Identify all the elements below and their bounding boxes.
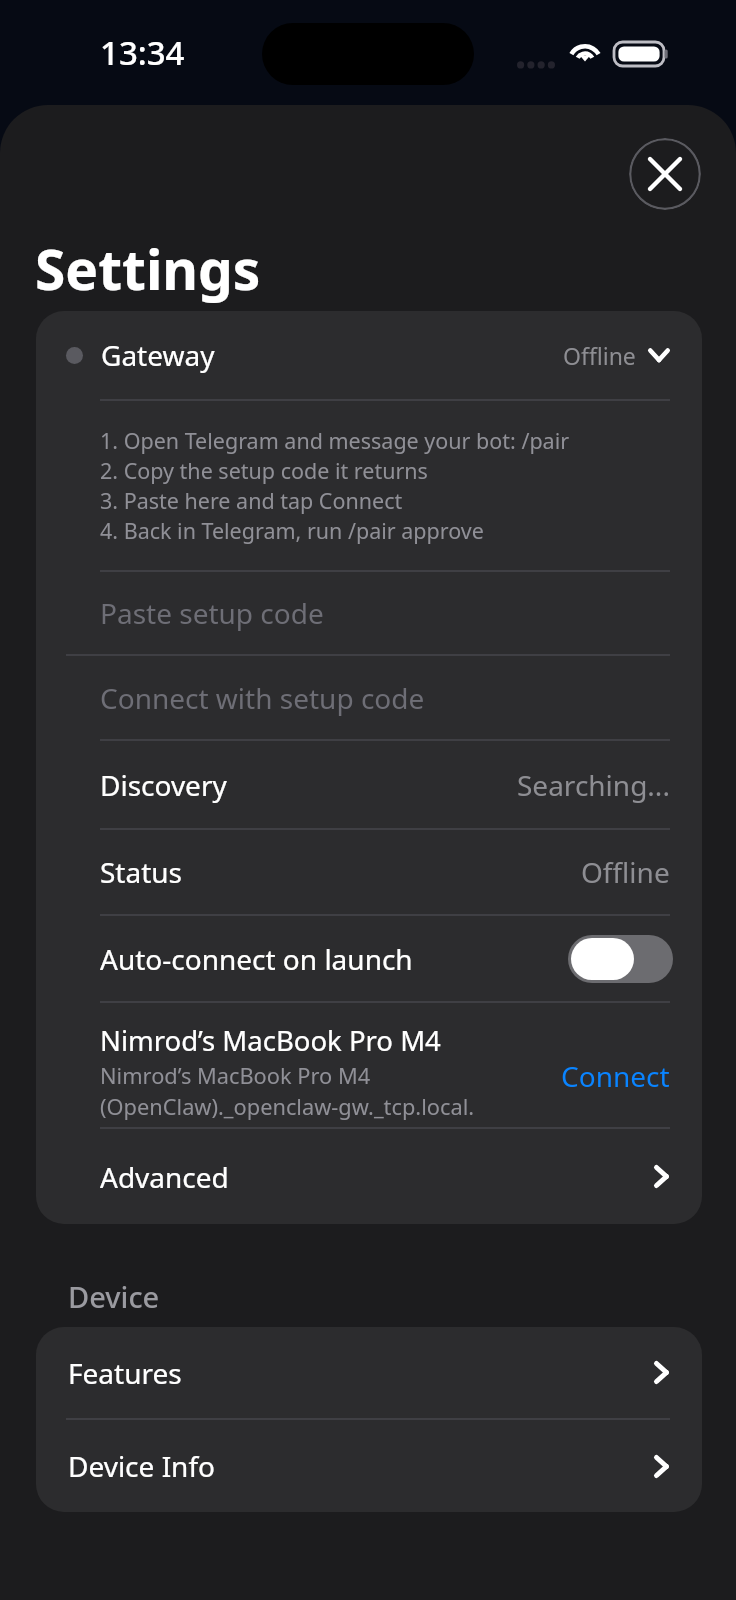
staticText: Advanced [100, 1158, 229, 1196]
staticText: Status [100, 853, 183, 891]
button[interactable]: Device Info [68, 1420, 669, 1512]
staticText: Paste setup code [100, 594, 324, 632]
button[interactable]: Advanced [100, 1129, 669, 1224]
staticText: Gateway [101, 336, 215, 374]
staticText: Connect [561, 1057, 670, 1095]
staticText: Device Info [68, 1447, 216, 1485]
button[interactable]: Close [629, 138, 701, 210]
staticText: Offline [581, 853, 670, 891]
staticText: Nimrod’s MacBook Pro M4 (OpenClaw)._open… [100, 1061, 475, 1121]
staticText: Features [68, 1354, 182, 1392]
staticText: Auto-connect on launch [100, 940, 413, 978]
staticText: 13:34 [100, 30, 185, 75]
staticText: Searching... [517, 766, 670, 804]
staticText: Offline [563, 340, 636, 371]
staticText: Discovery [100, 766, 227, 804]
button[interactable]: Status [100, 830, 670, 914]
button[interactable]: Nimrod’s MacBook Pro M4 [100, 1003, 670, 1127]
button[interactable]: Auto-connect on launch [100, 916, 673, 1001]
button[interactable]: Discovery [100, 741, 670, 828]
button[interactable]: Features [68, 1327, 669, 1418]
staticText: Connect with setup code [100, 679, 425, 717]
staticText: Settings [35, 231, 261, 306]
staticText: Device [68, 1277, 160, 1316]
staticText: Nimrod’s MacBook Pro M4 [100, 1022, 441, 1059]
button[interactable]: Connect with setup code [100, 656, 702, 739]
staticText: 1. Open Telegram and message your bot: /… [100, 426, 570, 545]
